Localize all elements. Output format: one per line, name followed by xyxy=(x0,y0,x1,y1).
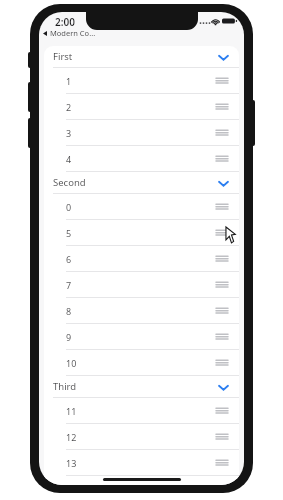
button[interactable]: 10 xyxy=(44,350,239,375)
staticText: 5 xyxy=(66,227,72,239)
button[interactable]: Second xyxy=(44,172,239,193)
other: Reorder item 11 xyxy=(214,404,230,418)
button[interactable]: 9 xyxy=(44,324,239,349)
button[interactable]: 6 xyxy=(44,246,239,271)
button[interactable]: 13 xyxy=(44,450,239,475)
other: Reorder item 8 xyxy=(214,304,230,318)
other: Collapse section Second xyxy=(216,176,230,190)
staticText: 13 xyxy=(66,457,77,469)
button[interactable]: 5 xyxy=(44,220,239,245)
other: Reorder item 9 xyxy=(214,330,230,344)
staticText: 1 xyxy=(66,75,72,87)
other: Reorder item 0 xyxy=(214,200,230,214)
other: Reorder item 2 xyxy=(214,100,230,114)
staticText: 2 xyxy=(66,101,72,113)
staticText: 12 xyxy=(66,431,77,443)
staticText: 6 xyxy=(66,253,72,265)
staticText: 3 xyxy=(66,127,72,139)
button[interactable]: Modern Co... xyxy=(42,27,97,39)
staticText: 4 xyxy=(66,153,72,165)
button[interactable]: 11 xyxy=(44,398,239,423)
button[interactable]: 3 xyxy=(44,120,239,145)
button[interactable]: First xyxy=(44,46,239,67)
other: Reorder item 6 xyxy=(214,252,230,266)
button[interactable]: 1 xyxy=(44,68,239,93)
button[interactable]: 0 xyxy=(44,194,239,219)
staticText: 9 xyxy=(66,331,72,343)
button[interactable]: 7 xyxy=(44,272,239,297)
button[interactable]: Third xyxy=(44,376,239,397)
other: Reorder item 4 xyxy=(214,152,230,166)
other: Reorder item 13 xyxy=(214,456,230,470)
other: Collapse section Third xyxy=(216,380,230,394)
staticText: 7 xyxy=(66,279,72,291)
other: Reorder item 5 xyxy=(214,226,230,240)
staticText: 10 xyxy=(66,357,77,369)
other: Reorder item 12 xyxy=(214,430,230,444)
staticText: 8 xyxy=(66,305,72,317)
other: Reorder item 7 xyxy=(214,278,230,292)
button[interactable]: 12 xyxy=(44,424,239,449)
staticText: First xyxy=(53,50,73,63)
other: Reorder item 10 xyxy=(214,356,230,370)
button[interactable]: 2 xyxy=(44,94,239,119)
staticText: Third xyxy=(53,380,77,393)
staticText: 11 xyxy=(66,405,77,417)
button[interactable]: 8 xyxy=(44,298,239,323)
staticText: 0 xyxy=(66,201,72,213)
staticText: Modern Co... xyxy=(50,28,96,38)
other: Collapse section First xyxy=(216,50,230,64)
staticText: 2:00 xyxy=(55,15,75,29)
other: Reorder item 3 xyxy=(214,126,230,140)
other: Reorder item 1 xyxy=(214,74,230,88)
button[interactable]: 4 xyxy=(44,146,239,171)
staticText: Second xyxy=(53,176,86,189)
